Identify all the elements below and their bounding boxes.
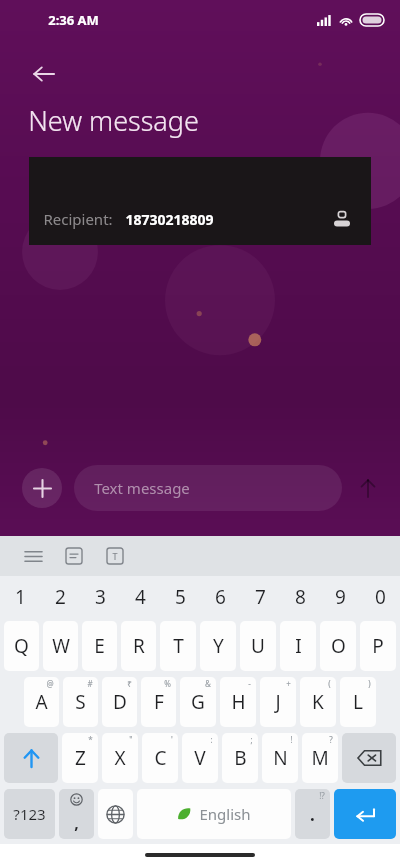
staticText: 5 (175, 584, 186, 610)
staticText: M (311, 745, 329, 771)
button[interactable]: + (260, 677, 296, 727)
button[interactable]: ' (142, 733, 178, 783)
staticText: ?123 (13, 804, 46, 824)
staticText: ( (328, 678, 331, 689)
button[interactable]: ) (340, 677, 376, 727)
button[interactable]: : (182, 733, 218, 783)
button[interactable]: Text message (74, 465, 342, 511)
button[interactable]: R (121, 621, 156, 671)
staticText: D (113, 689, 127, 715)
staticText: S (75, 689, 86, 715)
button[interactable]: !? (295, 789, 330, 839)
staticText: * (88, 734, 93, 745)
button[interactable]: 6 (200, 576, 240, 618)
staticText: !? (319, 790, 325, 801)
staticText: C (154, 745, 167, 771)
staticText: Y (213, 633, 224, 659)
button[interactable]: Change language (98, 789, 133, 839)
button[interactable]: ; (222, 733, 258, 783)
staticText: X (114, 745, 126, 771)
button[interactable]: ?123 (4, 789, 55, 839)
button[interactable]: 5 (160, 576, 200, 618)
staticText: . (310, 803, 315, 826)
staticText: H (231, 689, 246, 715)
button[interactable]: ? (302, 733, 338, 783)
button[interactable]: Menu (18, 541, 48, 571)
staticText: P (372, 633, 384, 659)
staticText: T (112, 550, 118, 562)
staticText: 6 (215, 584, 226, 610)
staticText: L (353, 689, 363, 715)
staticText: ! (290, 734, 293, 745)
button[interactable]: 1 (0, 576, 40, 618)
button[interactable]: Recipient: (29, 157, 371, 245)
button[interactable]: Back (24, 54, 64, 94)
button[interactable]: 4 (120, 576, 160, 618)
button[interactable]: O (320, 621, 356, 671)
staticText: O (331, 633, 346, 659)
staticText: N (273, 745, 288, 771)
button[interactable]: 3 (80, 576, 120, 618)
button[interactable]: 0 (360, 576, 400, 618)
button[interactable]: & (180, 677, 216, 727)
staticText: Text message (94, 478, 190, 498)
button[interactable]: @ (24, 677, 59, 727)
button[interactable]: * (62, 733, 98, 783)
button[interactable]: 7 (240, 576, 280, 618)
button[interactable]: - (220, 677, 256, 727)
staticText: F (154, 689, 164, 715)
staticText: : (210, 734, 213, 745)
staticText: 3 (95, 584, 106, 610)
staticText: 2 (55, 584, 66, 610)
button[interactable]: Clipboard (59, 541, 89, 571)
button[interactable]: Text style (100, 541, 130, 571)
staticText: E (94, 633, 105, 659)
button[interactable]: Emoji and comma (59, 789, 94, 839)
button[interactable]: Pick contact (325, 203, 359, 237)
staticText: , (74, 812, 79, 834)
button[interactable]: English (137, 789, 291, 839)
button[interactable]: Send (342, 462, 394, 514)
staticText: 0 (375, 584, 386, 610)
staticText: 9 (335, 584, 346, 610)
staticText: & (205, 678, 211, 689)
button[interactable]: P (360, 621, 396, 671)
button[interactable]: Y (200, 621, 236, 671)
button[interactable]: ! (262, 733, 298, 783)
staticText: 2:36 AM (48, 11, 99, 29)
button[interactable]: " (102, 733, 138, 783)
button[interactable]: E (82, 621, 117, 671)
staticText: R (133, 633, 145, 659)
button[interactable]: 8 (280, 576, 320, 618)
staticText: 18730218809 (125, 210, 214, 229)
staticText: Z (75, 745, 86, 771)
staticText: W (52, 633, 70, 659)
staticText: 1 (15, 584, 26, 610)
staticText: ) (368, 678, 371, 689)
button[interactable]: W (43, 621, 78, 671)
staticText: B (234, 745, 247, 771)
button[interactable]: Shift (4, 733, 58, 783)
staticText: 8 (295, 584, 306, 610)
staticText: A (35, 689, 48, 715)
button[interactable]: Q (4, 621, 39, 671)
staticText: ₹ (127, 678, 132, 689)
button[interactable]: % (141, 677, 176, 727)
button[interactable]: ( (300, 677, 336, 727)
button[interactable]: Enter (334, 789, 396, 839)
staticText: ? (329, 734, 333, 745)
button[interactable]: 2 (40, 576, 80, 618)
button[interactable]: Add attachment (22, 468, 62, 508)
staticText: 4 (135, 584, 146, 610)
button[interactable]: I (280, 621, 316, 671)
button[interactable]: 9 (320, 576, 360, 618)
staticText: - (248, 678, 251, 689)
button[interactable]: Backspace (342, 733, 396, 783)
button[interactable]: U (240, 621, 276, 671)
staticText: Recipient: (43, 209, 113, 229)
button[interactable]: # (63, 677, 98, 727)
staticText: T (173, 633, 184, 659)
button[interactable]: ₹ (102, 677, 137, 727)
staticText: Q (14, 633, 29, 659)
button[interactable]: T (160, 621, 196, 671)
